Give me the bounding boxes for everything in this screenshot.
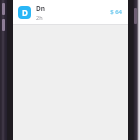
staticText: D <box>22 7 28 18</box>
button[interactable]: Volume up <box>2 3 5 15</box>
button[interactable]: Volume down <box>2 19 5 31</box>
staticText: 2h <box>36 14 43 21</box>
staticText: Dn <box>36 4 45 13</box>
button[interactable]: Power <box>134 8 137 24</box>
staticText: $ 64 <box>110 8 122 16</box>
button[interactable]: D <box>13 0 128 24</box>
